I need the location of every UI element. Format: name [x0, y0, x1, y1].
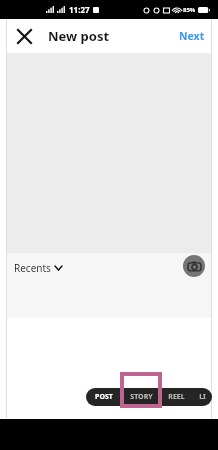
staticText: LI — [199, 392, 206, 402]
button[interactable]: Next — [174, 24, 210, 48]
staticText: 11:27 — [69, 4, 90, 15]
staticText: Next — [179, 29, 205, 43]
staticText: POST — [95, 392, 113, 402]
button[interactable]: POST — [86, 388, 122, 406]
button[interactable]: STORY — [122, 388, 160, 406]
button[interactable]: REEL — [160, 388, 192, 406]
button[interactable]: LI — [192, 388, 212, 406]
staticText: Recents — [14, 261, 51, 275]
staticText: New post — [48, 27, 110, 45]
staticText: REEL — [168, 392, 185, 402]
button[interactable]: Open camera — [183, 255, 205, 277]
staticText: STORY — [130, 392, 153, 402]
staticText: 85% — [183, 6, 196, 14]
button[interactable]: Close — [12, 24, 36, 48]
button[interactable]: Recents — [14, 259, 62, 277]
